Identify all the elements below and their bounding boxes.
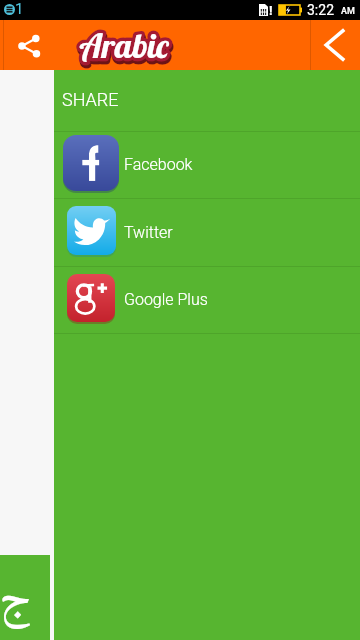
button[interactable]: Back	[310, 20, 360, 70]
staticText: !	[269, 3, 273, 18]
button[interactable]: Facebook	[54, 132, 360, 199]
staticText: 3:22	[307, 2, 334, 18]
staticText: Facebook	[124, 155, 193, 174]
button[interactable]: Twitter	[54, 199, 360, 267]
button[interactable]: Arabic	[0, 555, 50, 640]
staticText: Arabic	[82, 27, 171, 70]
staticText: Google Plus	[124, 290, 208, 309]
staticText: 1	[15, 0, 24, 18]
button[interactable]: Share	[0, 20, 54, 70]
button[interactable]: Google Plus	[54, 267, 360, 334]
staticText: Arabic	[81, 24, 170, 67]
staticText: AM	[341, 6, 355, 17]
staticText: ج	[0, 568, 31, 636]
staticText: SHARE	[62, 89, 119, 110]
staticText: Arabic	[81, 24, 170, 67]
staticText: Twitter	[124, 223, 173, 242]
